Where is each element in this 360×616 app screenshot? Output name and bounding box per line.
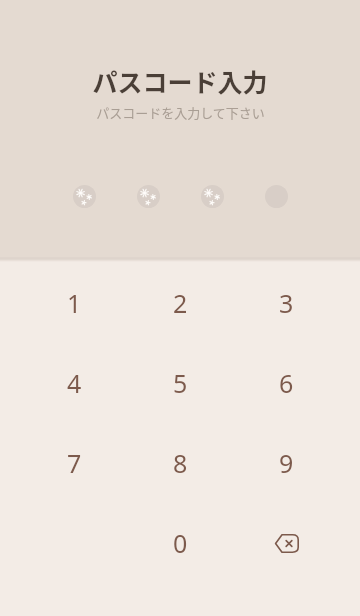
button[interactable]: 4 — [21, 343, 127, 423]
staticText: 2 — [173, 286, 188, 320]
staticText: 3 — [279, 286, 294, 320]
staticText: パスコードを入力して下さい — [96, 103, 265, 122]
button[interactable]: 3 — [233, 263, 339, 343]
button[interactable]: 2 — [127, 263, 233, 343]
staticText: 8 — [173, 446, 188, 480]
button[interactable]: 5 — [127, 343, 233, 423]
staticText: 5 — [173, 366, 188, 400]
staticText: 1 — [67, 286, 82, 320]
staticText: 6 — [279, 366, 294, 400]
staticText: 0 — [173, 526, 188, 560]
button[interactable]: 8 — [127, 423, 233, 503]
staticText: パスコード入力 — [92, 63, 268, 99]
staticText: 4 — [67, 366, 82, 400]
button[interactable]: 9 — [233, 423, 339, 503]
button[interactable]: 7 — [21, 423, 127, 503]
staticText: 9 — [279, 446, 294, 480]
staticText: 7 — [67, 446, 82, 480]
button[interactable]: Delete — [233, 503, 339, 583]
button[interactable]: 0 — [127, 503, 233, 583]
button[interactable]: 6 — [233, 343, 339, 423]
button[interactable]: 1 — [21, 263, 127, 343]
